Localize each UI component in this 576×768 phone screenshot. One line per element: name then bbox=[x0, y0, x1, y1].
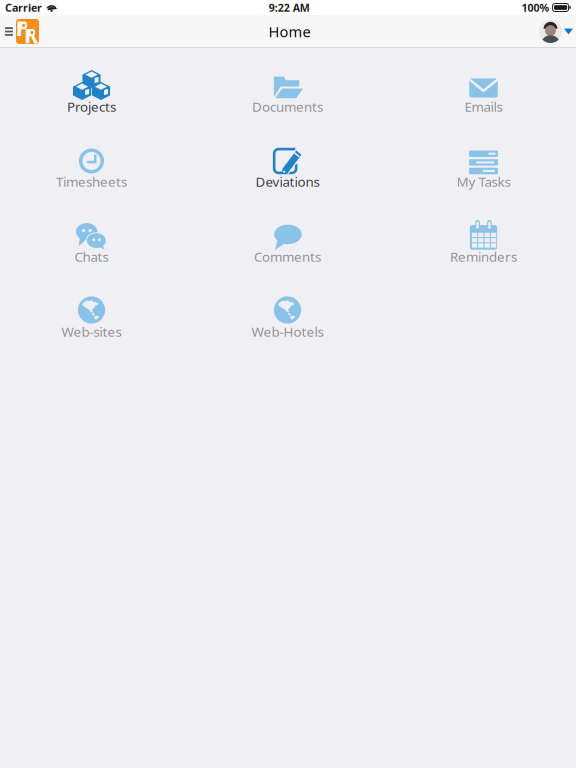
button[interactable]: Documents bbox=[189, 48, 385, 123]
staticText: Projects bbox=[67, 98, 116, 115]
button[interactable]: Menu bbox=[0, 15, 45, 48]
staticText: 9:22 AM bbox=[269, 0, 310, 15]
button[interactable]: Projects bbox=[0, 48, 189, 123]
staticText: Web-Hotels bbox=[251, 323, 323, 340]
button[interactable]: Web-Hotels bbox=[189, 273, 385, 348]
staticText: Timesheets bbox=[56, 173, 127, 190]
button[interactable]: Account bbox=[534, 15, 576, 48]
staticText: Carrier bbox=[5, 0, 42, 15]
staticText: Web-sites bbox=[61, 323, 121, 340]
button[interactable]: Reminders bbox=[385, 198, 576, 273]
button[interactable]: Deviations bbox=[189, 123, 385, 198]
staticText: Home bbox=[268, 22, 310, 41]
button[interactable]: Web-sites bbox=[0, 273, 189, 348]
staticText: Comments bbox=[254, 248, 321, 265]
staticText: Documents bbox=[252, 98, 323, 115]
staticText: Chats bbox=[74, 248, 108, 265]
button[interactable]: My Tasks bbox=[385, 123, 576, 198]
button[interactable]: Timesheets bbox=[0, 123, 189, 198]
button[interactable]: Comments bbox=[189, 198, 385, 273]
button[interactable]: Emails bbox=[385, 48, 576, 123]
staticText: 100% bbox=[522, 0, 550, 15]
staticText: Reminders bbox=[450, 248, 517, 265]
staticText: My Tasks bbox=[456, 173, 510, 190]
button[interactable]: Chats bbox=[0, 198, 189, 273]
staticText: Deviations bbox=[255, 173, 319, 190]
staticText: Emails bbox=[464, 98, 502, 115]
